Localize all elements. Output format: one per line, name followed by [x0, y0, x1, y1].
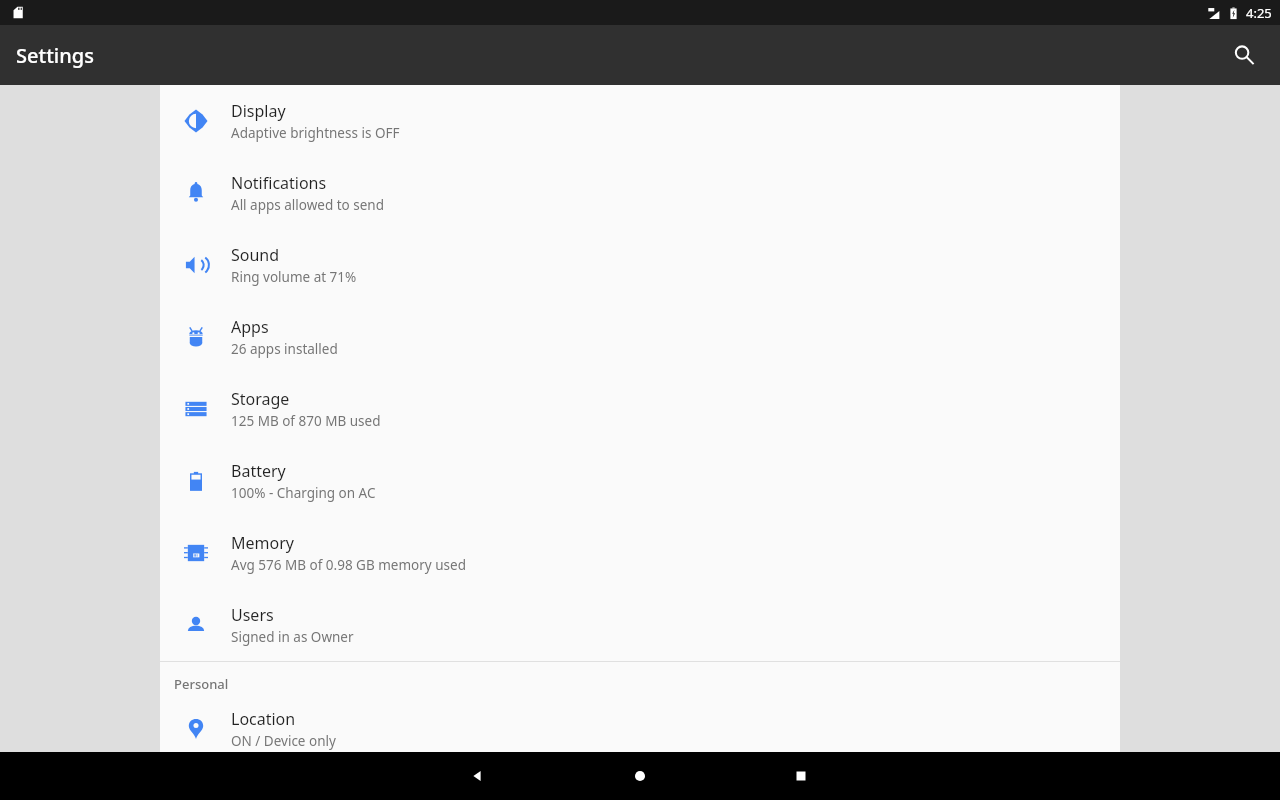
staticText: Storage: [231, 388, 290, 410]
staticText: 100% - Charging on AC: [231, 484, 376, 502]
staticText: Sound: [231, 244, 280, 266]
button[interactable]: Back: [453, 752, 501, 800]
button[interactable]: Location: [160, 705, 1120, 752]
staticText: 4:25: [1246, 4, 1272, 22]
button[interactable]: Display: [160, 85, 1120, 157]
staticText: 26 apps installed: [231, 340, 338, 358]
button[interactable]: Notifications: [160, 157, 1120, 229]
staticText: Memory: [231, 532, 294, 554]
button[interactable]: Battery: [160, 445, 1120, 517]
staticText: Display: [231, 100, 286, 122]
staticText: ON / Device only: [231, 732, 336, 750]
button[interactable]: Sound: [160, 229, 1120, 301]
staticText: Users: [231, 604, 274, 626]
staticText: Apps: [231, 316, 269, 338]
button[interactable]: Recent apps: [777, 752, 825, 800]
staticText: 125 MB of 870 MB used: [231, 412, 381, 430]
button[interactable]: Apps: [160, 301, 1120, 373]
staticText: Signed in as Owner: [231, 628, 354, 646]
staticText: Ring volume at 71%: [231, 268, 357, 286]
staticText: Adaptive brightness is OFF: [231, 124, 400, 142]
button[interactable]: Search: [1220, 31, 1268, 79]
staticText: Battery: [231, 460, 286, 482]
staticText: Location: [231, 708, 296, 730]
button[interactable]: Home: [616, 752, 664, 800]
staticText: Settings: [16, 42, 94, 69]
button[interactable]: Users: [160, 589, 1120, 661]
staticText: All apps allowed to send: [231, 196, 385, 214]
staticText: Personal: [174, 675, 229, 693]
button[interactable]: Memory: [160, 517, 1120, 589]
staticText: Avg 576 MB of 0.98 GB memory used: [231, 556, 466, 574]
button[interactable]: Storage: [160, 373, 1120, 445]
staticText: Notifications: [231, 172, 327, 194]
